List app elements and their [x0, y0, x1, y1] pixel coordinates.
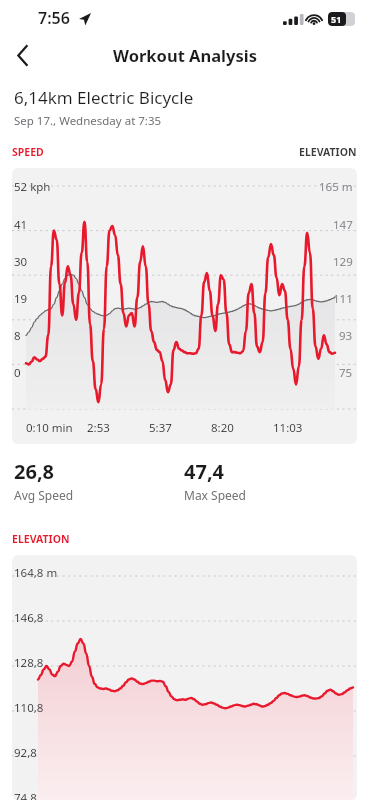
staticText: ELEVATION — [299, 145, 357, 159]
staticText: 8 — [14, 328, 21, 344]
staticText: 74,8 — [14, 790, 37, 800]
staticText: Max Speed — [184, 487, 246, 503]
staticText: 52 kph — [14, 179, 51, 195]
staticText: 129 — [333, 254, 353, 270]
staticText: Workout Analysis — [113, 44, 257, 66]
staticText: 0:10 min — [26, 420, 73, 436]
staticText: 11:03 — [273, 420, 303, 436]
staticText: 111 — [333, 291, 353, 307]
staticText: 110,8 — [14, 700, 44, 716]
staticText: Avg Speed — [14, 487, 74, 503]
button[interactable]: 52 kph — [12, 168, 357, 444]
staticText: 2:53 — [87, 420, 110, 436]
staticText: 26,8 — [14, 458, 55, 485]
staticText: SPEED — [12, 145, 44, 159]
staticText: 93 — [339, 328, 353, 344]
button[interactable]: 164,8 m — [12, 555, 357, 800]
staticText: 0 — [14, 365, 21, 381]
button[interactable]: Back — [0, 38, 44, 72]
staticText: 7:56 — [38, 7, 70, 29]
staticText: 164,8 m — [14, 565, 58, 581]
staticText: 75 — [339, 365, 353, 381]
staticText: 5:37 — [149, 420, 172, 436]
staticText: 6,14km Electric Bicycle — [14, 86, 194, 109]
staticText: 8:20 — [211, 420, 234, 436]
staticText: ELEVATION — [12, 532, 70, 546]
staticText: 30 — [14, 254, 28, 270]
staticText: Sep 17., Wednesday at 7:35 — [14, 113, 162, 129]
staticText: 147 — [333, 217, 353, 233]
staticText: 165 m — [319, 179, 353, 195]
staticText: 146,8 — [14, 610, 44, 626]
staticText: 92,8 — [14, 745, 37, 761]
staticText: 51 — [331, 13, 342, 25]
staticText: 128,8 — [14, 655, 44, 671]
staticText: 19 — [14, 291, 28, 307]
staticText: 47,4 — [184, 458, 225, 485]
staticText: 41 — [14, 217, 28, 233]
